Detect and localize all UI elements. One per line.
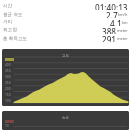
staticText: 150 — [5, 93, 11, 97]
staticText: meter — [117, 28, 128, 33]
staticText: km/h — [118, 12, 128, 17]
staticText: 388 — [102, 26, 117, 34]
staticText: 시간 — [3, 3, 13, 9]
button[interactable]: 총 획득고도 — [0, 34, 130, 42]
staticText: 평균 속도 — [3, 11, 23, 17]
staticText: 속도 — [62, 116, 70, 121]
staticText: 400 — [5, 63, 11, 67]
staticText: meter — [117, 36, 128, 41]
staticText: 350 — [5, 69, 11, 73]
staticText: km — [122, 20, 128, 25]
staticText: 총 획득고도 — [3, 35, 28, 41]
button[interactable]: 거리 — [0, 18, 130, 26]
staticText: 300 — [5, 75, 11, 79]
button[interactable]: Speed chart — [2, 111, 129, 130]
button[interactable]: 시간 — [0, 2, 130, 10]
button[interactable]: 최고점 — [0, 26, 130, 34]
staticText: 291 — [102, 34, 117, 42]
button[interactable]: 평균 속도 — [0, 10, 130, 18]
staticText: 10 — [5, 124, 9, 128]
staticText: 200 — [5, 87, 11, 91]
staticText: 최고점 — [3, 27, 17, 33]
staticText: 거리 — [3, 19, 13, 25]
staticText: 4.1 — [110, 18, 122, 26]
staticText: 고도 — [62, 54, 70, 59]
staticText: 2.7 — [106, 10, 118, 18]
staticText: 250 — [5, 81, 11, 85]
button[interactable]: Elevation chart — [2, 49, 129, 106]
staticText: 01:40:13 — [95, 2, 128, 10]
staticText: 100 — [5, 99, 11, 103]
